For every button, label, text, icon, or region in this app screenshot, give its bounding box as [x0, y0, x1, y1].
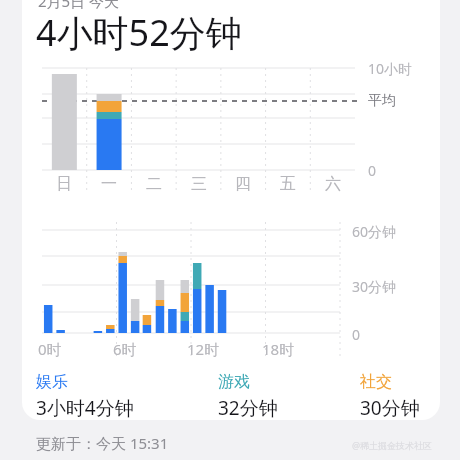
- button[interactable]: [22, 0, 440, 420]
- staticText: 30分钟: [360, 395, 420, 420]
- staticText: 游戏: [218, 372, 250, 392]
- staticText: 六: [325, 174, 341, 194]
- staticText: 0: [368, 161, 377, 180]
- staticText: 6时: [113, 339, 137, 359]
- staticText: 社交: [360, 372, 392, 392]
- staticText: 四: [235, 174, 251, 194]
- staticText: 二: [146, 174, 162, 194]
- button[interactable]: 娱乐: [36, 372, 134, 420]
- staticText: 0时: [38, 339, 62, 359]
- button[interactable]: Hourly usage chart: [0, 222, 460, 357]
- staticText: @稀土掘金技术社区: [352, 439, 433, 451]
- staticText: 一: [101, 174, 117, 194]
- staticText: 18时: [262, 339, 295, 359]
- staticText: 4小时52分钟: [36, 8, 242, 57]
- staticText: 10小时: [368, 59, 413, 78]
- staticText: 2月5日 今天: [38, 0, 120, 11]
- staticText: 平均: [368, 92, 396, 110]
- staticText: 30分钟: [352, 277, 397, 296]
- staticText: 日: [56, 174, 72, 194]
- button[interactable]: 社交: [360, 372, 420, 420]
- staticText: 60分钟: [352, 222, 397, 241]
- staticText: 12时: [187, 339, 220, 359]
- staticText: 32分钟: [218, 395, 278, 420]
- button[interactable]: 游戏: [218, 372, 278, 420]
- staticText: 三: [191, 174, 207, 194]
- staticText: 0: [352, 325, 361, 344]
- staticText: 更新于：今天 15:31: [36, 433, 169, 453]
- staticText: 娱乐: [36, 372, 68, 392]
- staticText: 3小时4分钟: [36, 395, 134, 420]
- staticText: 五: [280, 174, 296, 194]
- button[interactable]: Weekly usage chart: [0, 58, 460, 198]
